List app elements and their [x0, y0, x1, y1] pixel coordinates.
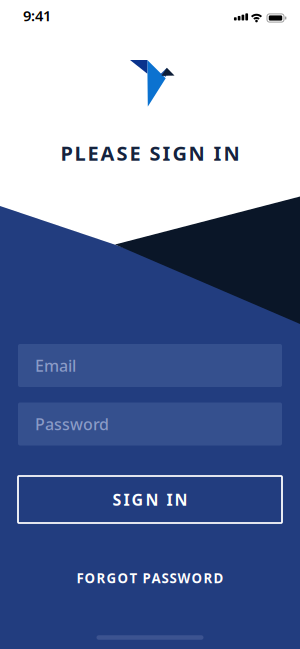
staticText: F O R G O T P A S S W O R D	[76, 569, 223, 587]
button[interactable]: S I G N I N	[18, 476, 282, 523]
staticText: Password	[35, 413, 109, 435]
staticText: Email	[35, 355, 76, 376]
staticText: S I G N I N	[112, 489, 187, 510]
button[interactable]: Email	[18, 344, 282, 387]
button[interactable]: F O R G O T P A S S W O R D	[76, 569, 223, 587]
staticText: 9:41	[23, 6, 51, 25]
button[interactable]: Password	[18, 402, 282, 445]
staticText: P L E A S E S I G N I N	[60, 140, 239, 166]
